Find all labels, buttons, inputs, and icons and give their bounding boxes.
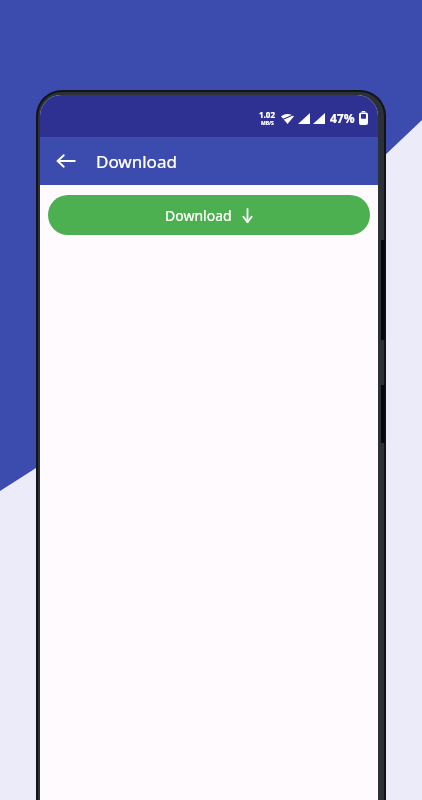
- staticText: Download: [165, 206, 232, 225]
- staticText: Download: [96, 150, 177, 173]
- button[interactable]: Back: [46, 141, 86, 181]
- staticText: 47%: [330, 110, 355, 126]
- button[interactable]: Download: [48, 195, 370, 235]
- staticText: MB/S: [261, 120, 274, 127]
- staticText: 1.02: [259, 109, 275, 120]
